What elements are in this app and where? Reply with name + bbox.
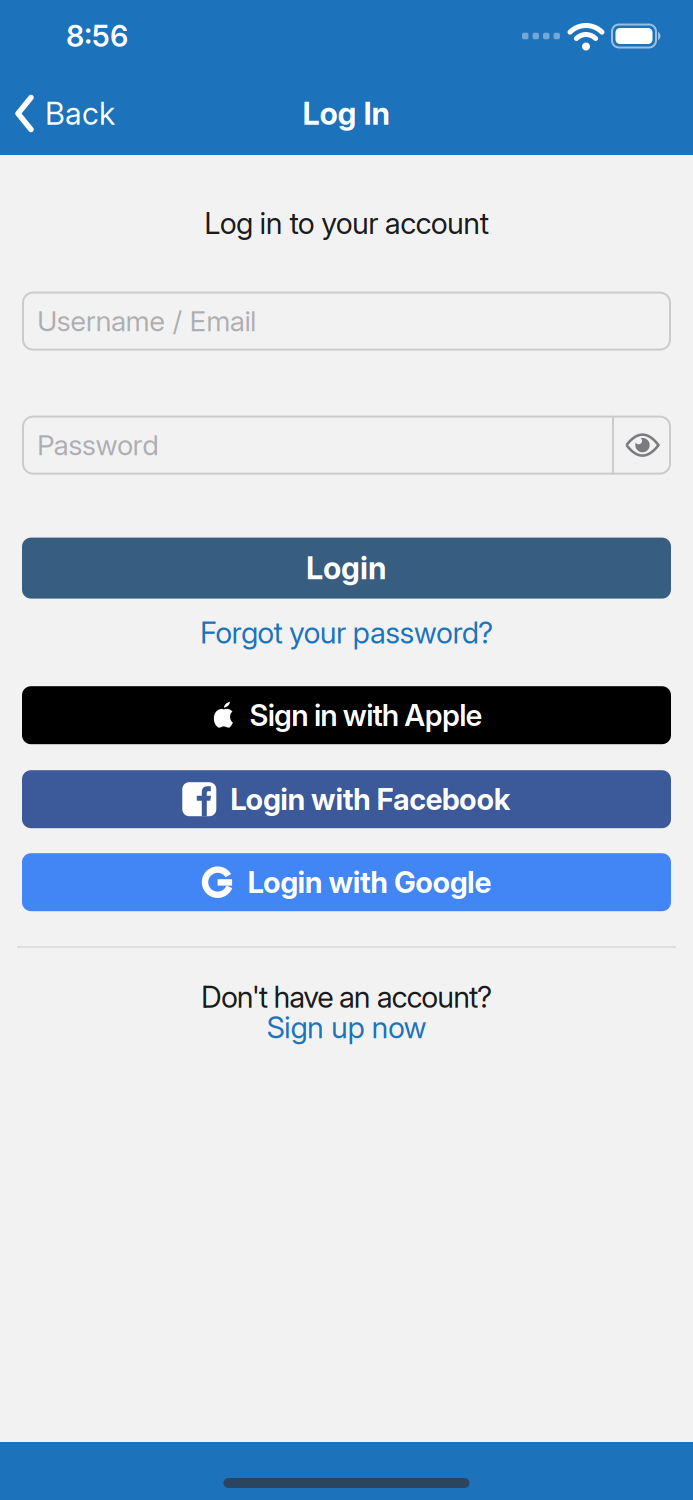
button[interactable]: Show password xyxy=(614,416,671,475)
staticText: Sign in with Apple xyxy=(249,698,483,732)
button[interactable]: Sign in with Apple xyxy=(22,686,671,744)
button[interactable]: Login xyxy=(22,538,671,599)
staticText: Login with Facebook xyxy=(230,782,511,816)
staticText: Sign up now xyxy=(266,1010,426,1045)
staticText: Don't have an account? xyxy=(201,980,492,1014)
button[interactable]: Forgot your password? xyxy=(200,616,493,650)
button[interactable]: Back xyxy=(14,94,115,132)
button[interactable]: Login with Facebook xyxy=(22,770,671,828)
staticText: Log in to your account xyxy=(204,206,489,241)
button[interactable]: Sign up now xyxy=(266,1010,426,1045)
button[interactable]: Login with Google xyxy=(22,853,671,911)
staticText: Forgot your password? xyxy=(200,616,493,650)
staticText: Login xyxy=(306,550,387,586)
staticText: 8:56 xyxy=(66,19,128,53)
staticText: Back xyxy=(45,95,115,132)
staticText: Login with Google xyxy=(248,865,491,899)
staticText: Username / Email xyxy=(37,305,256,338)
staticText: Log In xyxy=(302,95,390,132)
staticText: Password xyxy=(37,429,159,462)
